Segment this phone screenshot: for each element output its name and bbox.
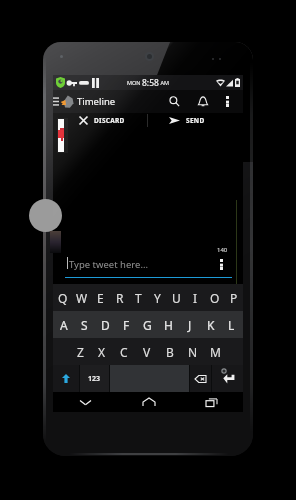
button[interactable]: Y: [148, 284, 167, 311]
button[interactable]: I: [186, 284, 205, 311]
staticText: 140: [217, 246, 228, 254]
staticText: SEND: [186, 116, 205, 125]
staticText: N: [188, 344, 198, 360]
staticText: S: [81, 317, 88, 333]
button[interactable]: P: [224, 284, 243, 311]
staticText: 8:58: [142, 77, 159, 89]
button[interactable]: C: [113, 338, 135, 365]
button[interactable]: W: [72, 284, 91, 311]
button[interactable]: S: [74, 311, 95, 338]
button[interactable]: X: [91, 338, 113, 365]
button[interactable]: M: [204, 338, 227, 365]
button[interactable]: Home: [117, 392, 180, 412]
button[interactable]: O: [205, 284, 224, 311]
staticText: Z: [77, 344, 84, 360]
button[interactable]: Search: [163, 90, 185, 113]
button[interactable]: More options: [218, 90, 236, 113]
button[interactable]: Back: [53, 392, 117, 412]
button[interactable]: V: [135, 338, 158, 365]
button[interactable]: U: [167, 284, 186, 311]
button[interactable]: Recent apps: [180, 392, 243, 412]
button[interactable]: F: [116, 311, 137, 338]
button[interactable]: H: [158, 311, 179, 338]
button[interactable]: Enter: [212, 365, 243, 392]
staticText: D: [101, 317, 110, 333]
staticText: Y: [154, 290, 161, 306]
button[interactable]: E: [91, 284, 110, 311]
button[interactable]: A: [54, 311, 74, 338]
staticText: J: [188, 317, 192, 333]
staticText: M: [210, 344, 221, 360]
button[interactable]: J: [179, 311, 200, 338]
button[interactable]: Shift: [53, 365, 79, 392]
staticText: Q: [58, 290, 68, 306]
staticText: L: [228, 317, 235, 333]
staticText: E: [97, 290, 104, 306]
button[interactable]: DISCARD: [79, 116, 125, 125]
button[interactable]: K: [200, 311, 221, 338]
staticText: AM: [159, 79, 169, 86]
button[interactable]: D: [95, 311, 116, 338]
staticText: U: [172, 290, 181, 306]
staticText: Timeline: [77, 95, 116, 108]
button[interactable]: T: [129, 284, 148, 311]
staticText: F: [123, 317, 130, 333]
staticText: DISCARD: [94, 116, 125, 125]
staticText: W: [76, 290, 88, 306]
button[interactable]: G: [137, 311, 158, 338]
staticText: R: [116, 290, 124, 306]
button[interactable]: SEND: [169, 116, 205, 125]
button[interactable]: L: [221, 311, 242, 338]
staticText: G: [143, 317, 152, 333]
staticText: H: [164, 317, 173, 333]
button[interactable]: Q: [53, 284, 72, 311]
button[interactable]: Notifications: [192, 90, 214, 113]
staticText: 123: [88, 374, 101, 384]
staticText: P: [230, 290, 238, 306]
staticText: MON: [127, 79, 142, 86]
staticText: A: [60, 317, 68, 333]
button[interactable]: R: [110, 284, 129, 311]
staticText: O: [210, 290, 220, 306]
button[interactable]: Z: [69, 338, 91, 365]
button[interactable]: Backspace: [190, 365, 211, 392]
button[interactable]: N: [181, 338, 204, 365]
staticText: I: [193, 290, 198, 306]
button[interactable]: Open navigation drawer: [53, 90, 75, 113]
staticText: C: [120, 344, 128, 360]
staticText: V: [143, 344, 151, 360]
staticText: K: [207, 317, 215, 333]
button[interactable]: B: [158, 338, 181, 365]
staticText: T: [135, 290, 142, 306]
button[interactable]: 123: [80, 365, 109, 392]
staticText: B: [166, 344, 174, 360]
staticText: X: [98, 344, 106, 360]
staticText: Type tweet here...: [69, 258, 149, 271]
